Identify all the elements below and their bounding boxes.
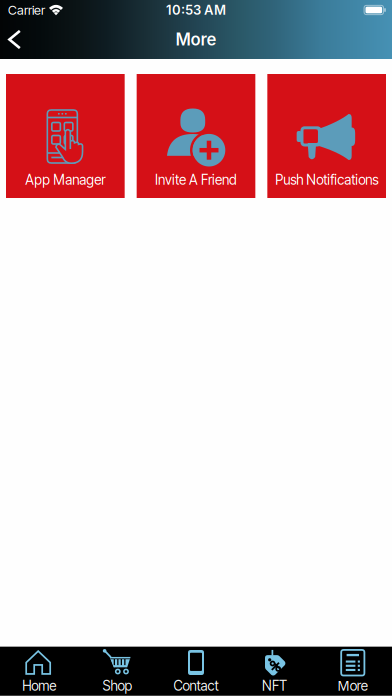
button[interactable]: More xyxy=(314,647,392,696)
button[interactable]: Contact xyxy=(157,647,235,696)
staticText: Carrier xyxy=(8,2,45,18)
button[interactable]: Back xyxy=(0,20,42,58)
staticText: Home xyxy=(22,677,56,694)
button[interactable]: Push Notifications xyxy=(267,74,386,198)
staticText: More xyxy=(175,29,216,50)
staticText: Contact xyxy=(173,677,218,694)
staticText: App Manager xyxy=(25,171,105,188)
staticText: NFT xyxy=(262,677,287,694)
button[interactable]: Shop xyxy=(78,647,157,696)
button[interactable]: NFT xyxy=(235,647,314,696)
button[interactable]: App Manager xyxy=(6,74,125,198)
button[interactable]: Invite A Friend xyxy=(137,74,255,198)
button[interactable]: Home xyxy=(0,647,78,696)
staticText: More xyxy=(338,677,368,694)
staticText: Shop xyxy=(103,677,133,694)
staticText: 10:53 AM xyxy=(166,2,226,18)
staticText: Push Notifications xyxy=(275,171,378,188)
staticText: Invite A Friend xyxy=(155,171,237,188)
